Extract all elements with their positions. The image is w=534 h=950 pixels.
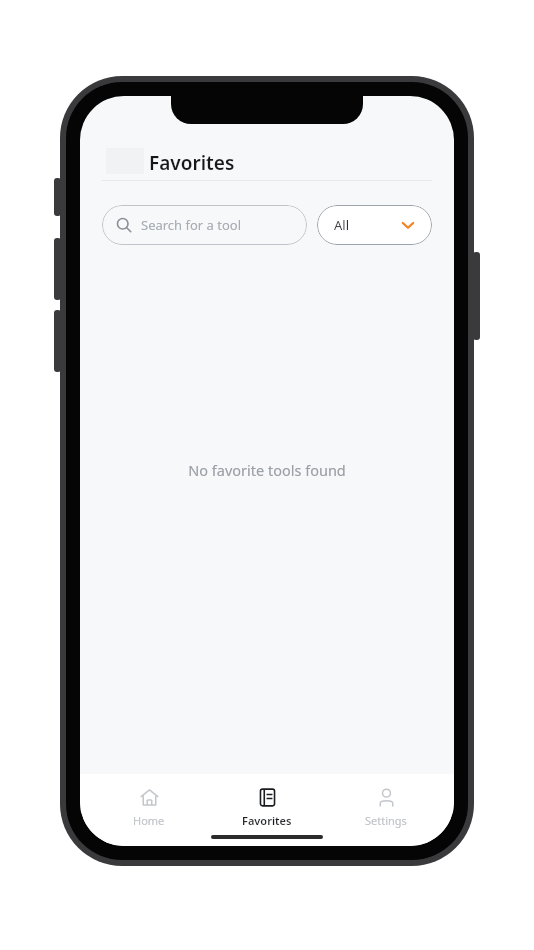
staticText: Settings [365,813,407,828]
button[interactable]: Favorites [217,784,317,832]
button[interactable]: Home [99,784,199,832]
staticText: Home [133,813,165,828]
staticText: Search for a tool [141,216,242,234]
staticText: No favorite tools found [188,460,346,480]
staticText: All [334,216,350,234]
button[interactable]: All [317,205,432,245]
staticText: Favorites [149,150,235,176]
button[interactable]: Settings [336,784,436,832]
other: Expand filter [401,218,415,232]
button[interactable]: Search for a tool [102,205,307,245]
staticText: Favorites [242,813,292,828]
